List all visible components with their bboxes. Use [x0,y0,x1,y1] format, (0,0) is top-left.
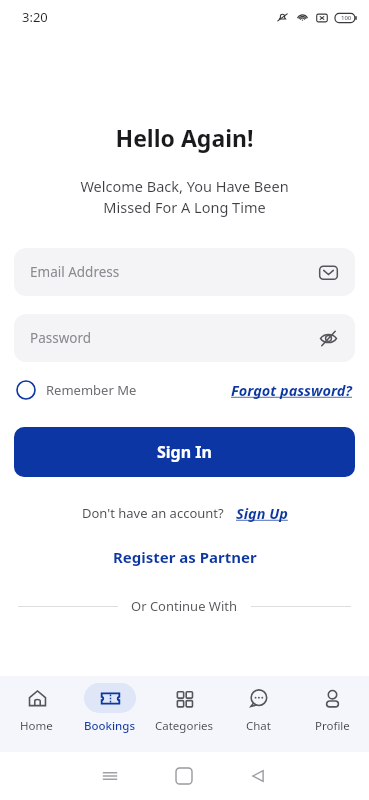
staticText: Sign Up [236,503,288,523]
other: Email [318,262,339,283]
button[interactable]: Email Address [14,248,355,296]
button[interactable]: Password [14,314,355,362]
button[interactable]: Sign Up [236,503,288,523]
staticText: Register as Partner [113,547,257,567]
staticText: Welcome Back, You Have Been Missed For A… [0,176,369,218]
button[interactable]: Forgot password? [231,380,353,400]
other: Show password [318,328,339,349]
staticText: Forgot password? [231,380,353,400]
button[interactable]: Recents [73,752,147,800]
staticText: Don't have an account? [82,504,224,522]
staticText: Profile [315,718,350,734]
staticText: Bookings [84,718,136,734]
button[interactable]: Back [221,752,295,800]
staticText: 3:20 [22,8,48,26]
button[interactable]: Sign In [14,427,355,477]
staticText: Categories [155,718,214,734]
staticText: Email Address [30,263,318,281]
staticText: Chat [246,718,271,734]
staticText: Password [30,329,318,347]
staticText: Home [20,718,53,734]
button[interactable]: Home [147,752,221,800]
staticText: Or Continue With [131,597,238,615]
staticText: Sign In [157,441,212,463]
staticText: Remember Me [46,381,137,399]
button[interactable]: Register as Partner [0,547,369,567]
button[interactable]: Home [0,676,73,734]
button[interactable]: Categories [147,676,221,734]
button[interactable]: Chat [221,676,295,734]
button[interactable]: Bookings [73,676,147,734]
button[interactable]: Remember Me [16,380,137,400]
button[interactable]: Profile [295,676,369,734]
staticText: 100 [341,14,352,22]
staticText: Hello Again! [0,122,369,153]
